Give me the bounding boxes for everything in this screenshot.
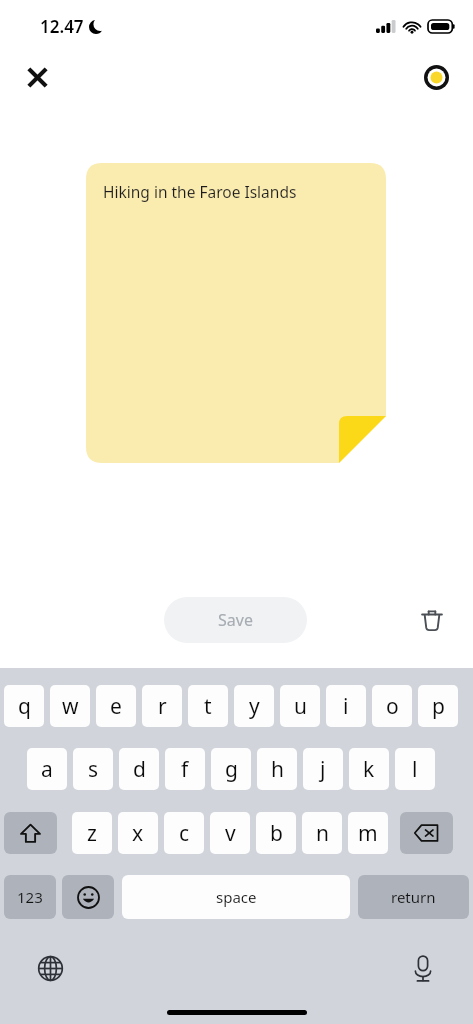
staticText: u bbox=[294, 692, 307, 721]
button[interactable]: Save bbox=[164, 597, 307, 643]
button[interactable]: 123 bbox=[4, 875, 56, 919]
staticText: i bbox=[343, 692, 349, 721]
staticText: 123 bbox=[17, 887, 43, 907]
staticText: z bbox=[87, 819, 97, 848]
button[interactable]: t bbox=[188, 685, 228, 727]
staticText: return bbox=[391, 887, 436, 907]
button[interactable]: e bbox=[96, 685, 136, 727]
staticText: m bbox=[358, 819, 378, 848]
button[interactable]: n bbox=[302, 812, 342, 854]
button[interactable]: space bbox=[122, 875, 350, 919]
button[interactable]: Emoji bbox=[62, 875, 114, 919]
button[interactable]: Dictate bbox=[401, 946, 445, 990]
button[interactable]: w bbox=[50, 685, 90, 727]
button[interactable]: x bbox=[118, 812, 158, 854]
button[interactable]: h bbox=[257, 748, 297, 790]
staticText: r bbox=[158, 692, 167, 721]
button[interactable]: c bbox=[164, 812, 204, 854]
button[interactable]: y bbox=[234, 685, 274, 727]
staticText: l bbox=[412, 755, 418, 784]
button[interactable]: g bbox=[211, 748, 251, 790]
button[interactable]: l bbox=[395, 748, 435, 790]
staticText: p bbox=[432, 692, 445, 721]
button[interactable]: p bbox=[418, 685, 458, 727]
button[interactable]: o bbox=[372, 685, 412, 727]
staticText: Hiking in the Faroe Islands bbox=[103, 181, 297, 202]
staticText: x bbox=[132, 819, 144, 848]
button[interactable]: f bbox=[165, 748, 205, 790]
staticText: a bbox=[41, 755, 53, 784]
staticText: j bbox=[320, 755, 326, 784]
button[interactable]: k bbox=[349, 748, 389, 790]
staticText: e bbox=[110, 692, 122, 721]
staticText: y bbox=[249, 692, 260, 721]
staticText: s bbox=[88, 755, 99, 784]
staticText: d bbox=[133, 755, 146, 784]
staticText: v bbox=[225, 819, 236, 848]
button[interactable]: b bbox=[256, 812, 296, 854]
button[interactable]: v bbox=[210, 812, 250, 854]
staticText: w bbox=[62, 692, 79, 721]
staticText: k bbox=[363, 755, 375, 784]
button[interactable]: Shift bbox=[4, 812, 57, 854]
button[interactable]: i bbox=[326, 685, 366, 727]
button[interactable]: a bbox=[27, 748, 67, 790]
staticText: c bbox=[179, 819, 190, 848]
button[interactable]: Close bbox=[13, 53, 61, 101]
button[interactable]: r bbox=[142, 685, 182, 727]
staticText: o bbox=[386, 692, 399, 721]
button[interactable]: z bbox=[72, 812, 112, 854]
staticText: f bbox=[181, 755, 189, 784]
staticText: h bbox=[271, 755, 284, 784]
button[interactable]: q bbox=[4, 685, 44, 727]
button[interactable]: d bbox=[119, 748, 159, 790]
staticText: t bbox=[204, 692, 212, 721]
staticText: g bbox=[225, 755, 238, 784]
button[interactable]: Delete bbox=[409, 597, 455, 643]
button[interactable]: j bbox=[303, 748, 343, 790]
staticText: n bbox=[316, 819, 329, 848]
button[interactable]: Change keyboard bbox=[28, 946, 72, 990]
button[interactable]: s bbox=[73, 748, 113, 790]
staticText: b bbox=[270, 819, 283, 848]
staticText: Save bbox=[218, 609, 253, 631]
button[interactable]: return bbox=[358, 875, 469, 919]
button[interactable]: Note color bbox=[412, 53, 460, 101]
staticText: space bbox=[216, 887, 257, 907]
button[interactable]: m bbox=[348, 812, 388, 854]
staticText: q bbox=[18, 692, 31, 721]
staticText: 12.47 bbox=[40, 15, 84, 38]
button[interactable]: u bbox=[280, 685, 320, 727]
button[interactable]: Backspace bbox=[400, 812, 453, 854]
